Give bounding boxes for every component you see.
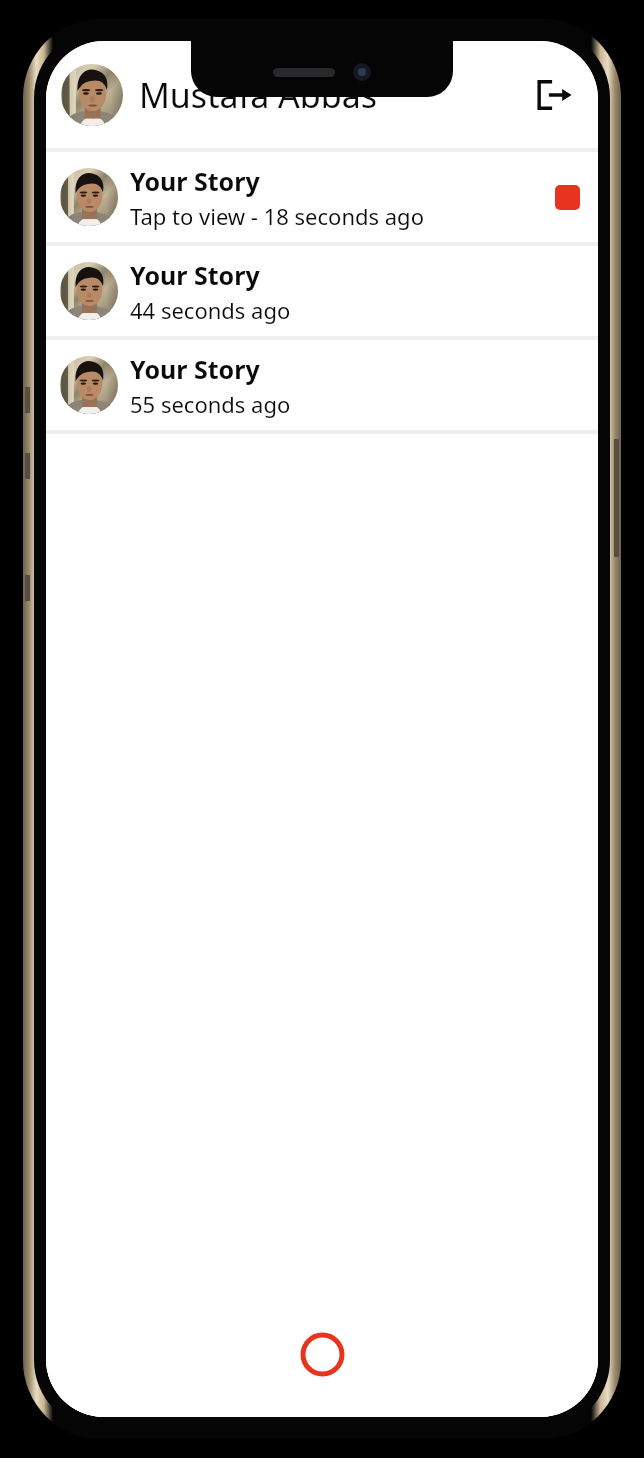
- button[interactable]: Loading: [297, 1329, 347, 1379]
- staticText: Your Story: [130, 164, 260, 198]
- button[interactable]: Log out: [532, 72, 578, 118]
- staticText: 44 seconds ago: [130, 295, 291, 325]
- button[interactable]: Your Story: [46, 340, 598, 430]
- staticText: Your Story: [130, 258, 260, 292]
- staticText: Your Story: [130, 352, 260, 386]
- staticText: 55 seconds ago: [130, 389, 291, 419]
- button[interactable]: [61, 64, 123, 126]
- staticText: Tap to view - 18 seconds ago: [130, 201, 424, 231]
- button[interactable]: Your Story: [46, 152, 598, 242]
- staticText: Mustafa Abbas: [139, 72, 532, 118]
- button[interactable]: Your Story: [46, 246, 598, 336]
